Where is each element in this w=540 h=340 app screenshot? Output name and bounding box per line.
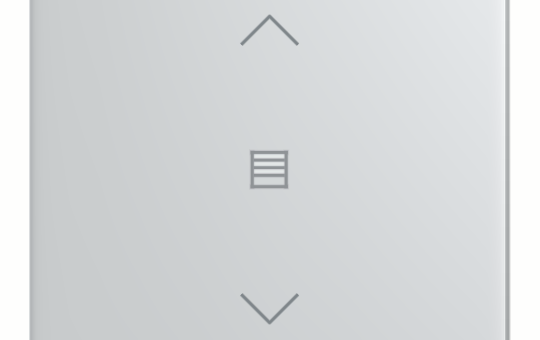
button[interactable]: Roller shutter rocker switch bbox=[0, 0, 540, 340]
